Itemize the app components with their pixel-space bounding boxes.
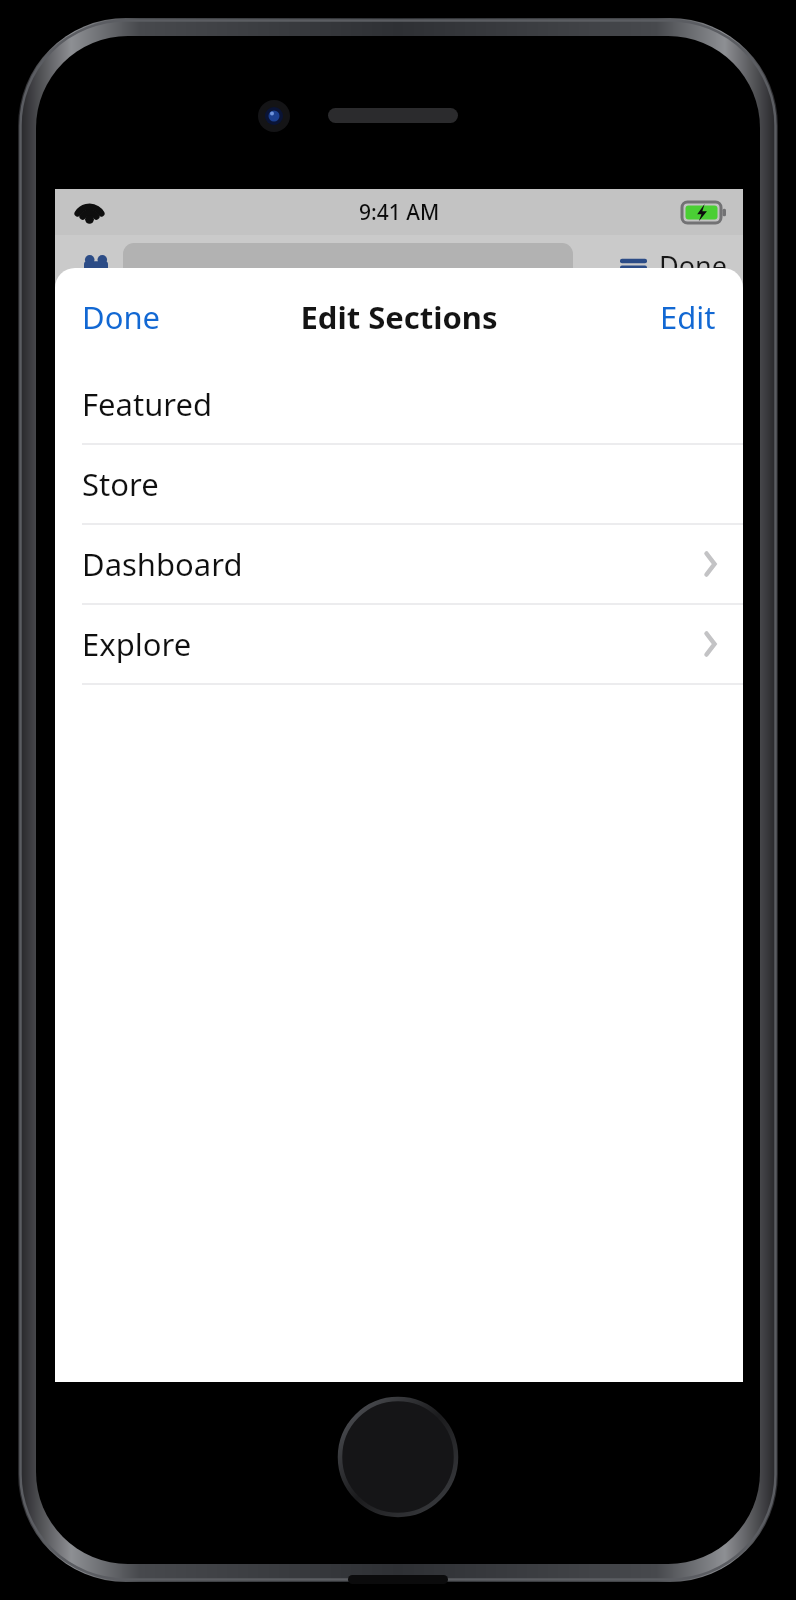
button[interactable]: Featured bbox=[55, 365, 743, 443]
button[interactable]: Dashboard bbox=[55, 525, 743, 603]
staticText: Done bbox=[659, 247, 727, 284]
staticText: Store bbox=[82, 463, 159, 505]
staticText: Dashboard bbox=[82, 543, 243, 585]
button[interactable]: Store bbox=[55, 445, 743, 523]
other: Open Explore bbox=[702, 629, 719, 659]
staticText: Featured bbox=[82, 383, 213, 425]
button[interactable]: Edit bbox=[633, 280, 743, 354]
staticText: Edit bbox=[660, 296, 716, 338]
button[interactable]: Done bbox=[55, 280, 188, 354]
staticText: Done bbox=[82, 296, 161, 338]
button[interactable]: Explore bbox=[55, 605, 743, 683]
staticText: Explore bbox=[82, 623, 192, 665]
other: Open Dashboard bbox=[702, 549, 719, 579]
staticText: 9:41 AM bbox=[359, 198, 440, 227]
staticText: Edit Sections bbox=[300, 296, 498, 338]
